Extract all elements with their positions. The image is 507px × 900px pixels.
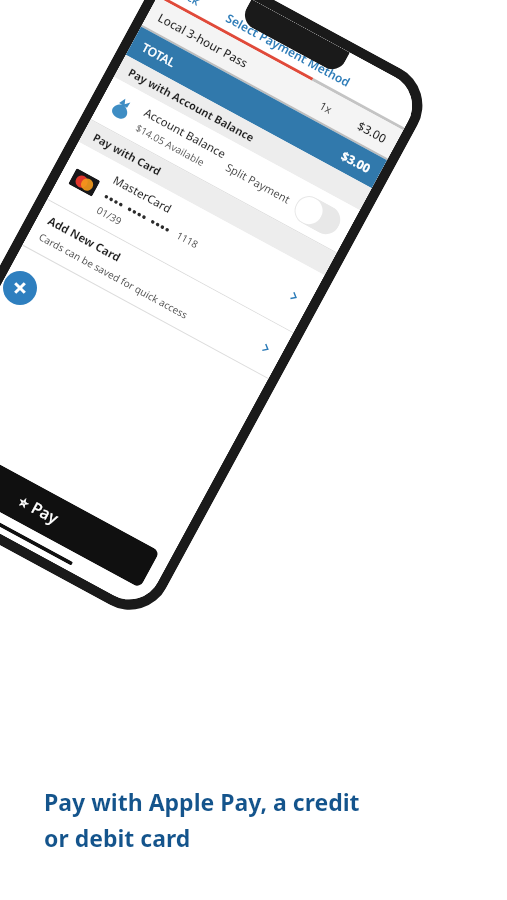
staticText: Split Payment	[223, 159, 294, 207]
staticText: Account Balance	[141, 105, 229, 162]
staticText: or debit card	[44, 822, 191, 853]
button[interactable]: Back	[172, 0, 204, 9]
staticText: 01/39	[94, 203, 125, 228]
button[interactable]:  Pay	[0, 430, 160, 588]
staticText: Pay with Card	[90, 129, 164, 179]
staticText: Pay with Apple Pay, a credit	[44, 786, 360, 817]
staticText: MasterCard	[110, 172, 175, 217]
staticText: Cards can be saved for quick access	[37, 230, 191, 322]
staticText: Local 3-hour Pass	[155, 9, 325, 111]
staticText:  Pay	[15, 489, 63, 529]
staticText: 1x	[317, 98, 336, 117]
staticText: $14.05 Available	[133, 121, 208, 170]
button[interactable]: Add New Card	[23, 200, 293, 378]
staticText: Pay with Account Balance	[126, 64, 257, 145]
button[interactable]: Split payment	[289, 191, 345, 239]
staticText: TOTAL	[139, 39, 346, 161]
staticText: $3.00	[339, 147, 374, 176]
button[interactable]: MasterCard	[47, 142, 325, 332]
staticText: $3.00	[355, 117, 390, 146]
staticText: Add New Card	[45, 213, 123, 266]
button[interactable]: Account Balance	[91, 77, 360, 252]
button[interactable]: Close	[3, 271, 37, 305]
staticText: Select Payment Method	[223, 9, 353, 90]
staticText: 1118	[174, 228, 201, 251]
